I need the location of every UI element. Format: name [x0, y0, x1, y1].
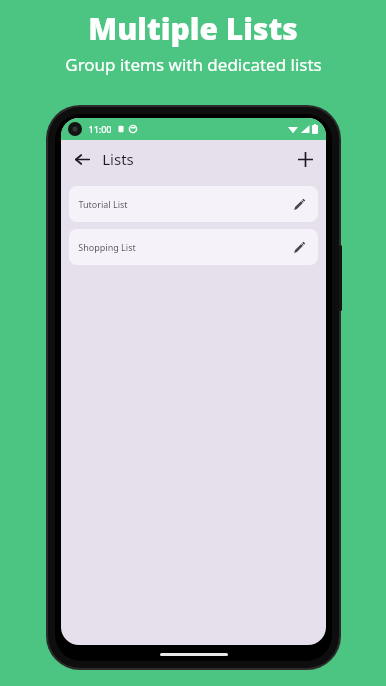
- staticText: Group items with dedicated lists: [65, 53, 322, 76]
- staticText: Shopping List: [78, 241, 136, 253]
- staticText: Tutorial List: [78, 198, 128, 210]
- button[interactable]: Edit Tutorial List: [286, 191, 312, 217]
- button[interactable]: Edit Shopping List: [286, 234, 312, 260]
- button[interactable]: Back: [67, 144, 97, 174]
- staticText: Multiple Lists: [88, 8, 298, 49]
- staticText: 11:00: [88, 123, 112, 135]
- staticText: Lists: [102, 149, 134, 169]
- button[interactable]: Shopping List: [69, 229, 318, 265]
- button[interactable]: Tutorial List: [69, 186, 318, 222]
- button[interactable]: Add list: [290, 144, 320, 174]
